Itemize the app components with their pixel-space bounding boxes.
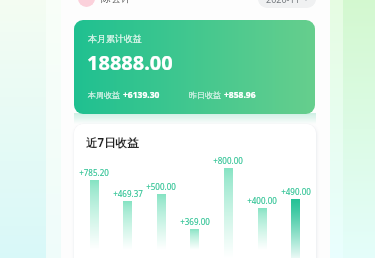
- staticText: +500.00: [143, 181, 179, 192]
- staticText: 昨日收益: [189, 90, 221, 100]
- button[interactable]: 2020-11: [258, 0, 316, 8]
- button[interactable]: User avatar: [78, 0, 95, 7]
- button[interactable]: 陈会计: [101, 0, 131, 5]
- staticText: 2020-11: [266, 0, 300, 5]
- staticText: +490.00: [278, 186, 314, 197]
- staticText: +400.00: [244, 195, 280, 206]
- staticText: 18888.00: [87, 49, 173, 76]
- staticText: +6139.30: [123, 89, 160, 101]
- button[interactable]: 本月累计收益: [74, 20, 315, 114]
- staticText: +469.37: [110, 188, 146, 199]
- staticText: 近7日收益: [86, 135, 139, 151]
- staticText: 本周收益: [88, 90, 120, 100]
- staticText: +369.00: [177, 216, 213, 227]
- staticText: +858.96: [224, 89, 256, 101]
- staticText: +785.20: [76, 167, 112, 178]
- staticText: +800.00: [210, 155, 246, 166]
- staticText: 本月累计收益: [88, 33, 142, 44]
